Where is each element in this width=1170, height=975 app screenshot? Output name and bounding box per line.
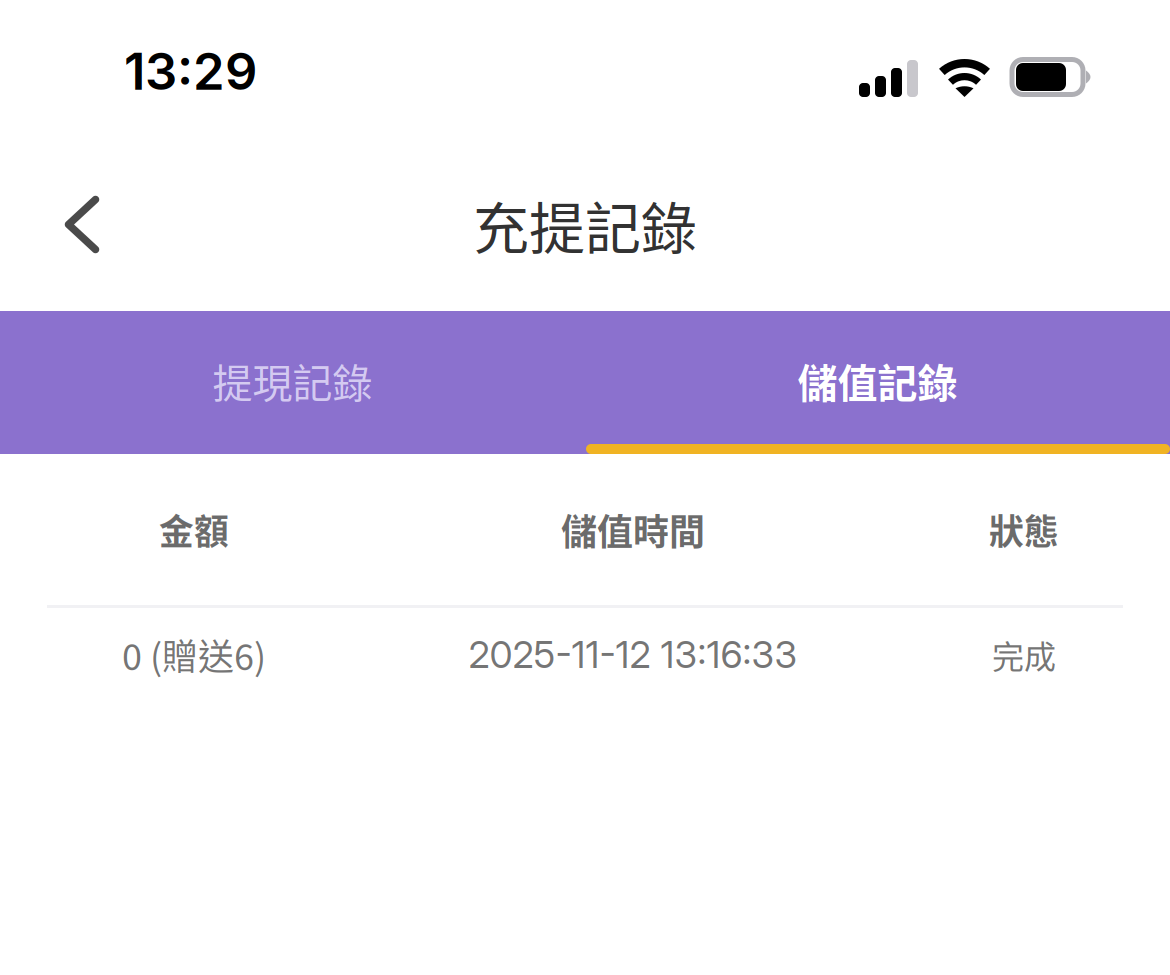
staticText: 完成: [992, 631, 1056, 678]
button[interactable]: 提現記錄: [0, 311, 585, 454]
staticText: 2025-11-12 13:16:33: [468, 632, 797, 677]
staticText: 儲值記錄: [797, 351, 957, 409]
staticText: 金額: [159, 504, 229, 555]
button[interactable]: 儲值記錄: [585, 311, 1170, 454]
staticText: 13:29: [124, 41, 257, 102]
staticText: 儲值時間: [561, 503, 705, 555]
staticText: 狀態: [989, 504, 1059, 555]
staticText: 0 (贈送6): [122, 628, 266, 680]
staticText: 充提記錄: [473, 184, 697, 265]
button[interactable]: Back: [26, 168, 138, 280]
button[interactable]: 0 (贈送6): [0, 608, 1170, 701]
staticText: 提現記錄: [212, 351, 372, 409]
